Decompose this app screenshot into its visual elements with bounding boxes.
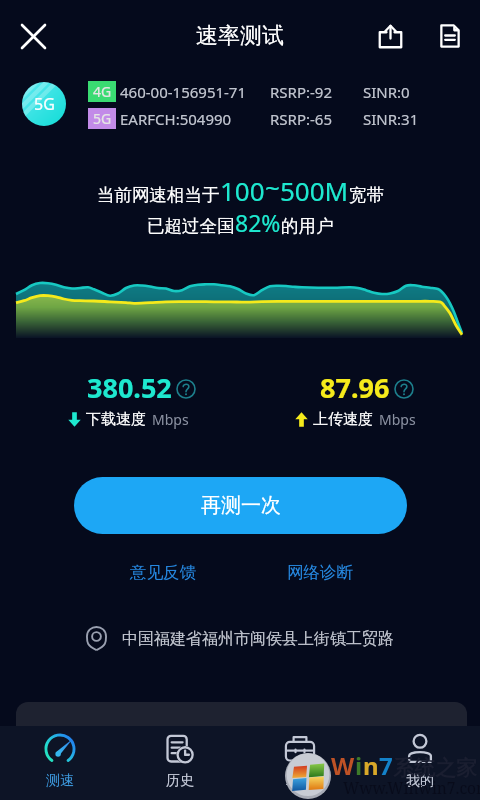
staticText: EARFCH:504990 (120, 109, 232, 129)
staticText: 历史 (166, 772, 194, 790)
staticText: 系统之家 (393, 755, 477, 781)
button[interactable]: Upload info (394, 379, 414, 399)
staticText: SINR:31 (363, 109, 419, 129)
staticText: 5G (93, 109, 112, 128)
staticText: 宽带 (349, 184, 384, 206)
staticText: 100 (220, 173, 265, 208)
staticText: ~ (265, 169, 280, 204)
button[interactable]: 意见反馈 (125, 559, 201, 586)
staticText: 5G (34, 93, 55, 115)
staticText: 7 (379, 749, 393, 782)
staticText: 再测一次 (201, 493, 281, 518)
staticText: Www.Winwin7.com (343, 777, 480, 798)
staticText: 测速 (46, 772, 74, 790)
staticText: 当前网速相当于 (97, 184, 220, 206)
staticText: RSRP:-65 (270, 109, 332, 129)
button[interactable]: 网络诊断 (282, 559, 358, 586)
button[interactable]: Report (433, 19, 467, 53)
staticText: 4G (93, 82, 112, 101)
button[interactable] (16, 702, 467, 752)
staticText: 速率测试 (196, 22, 284, 50)
button[interactable]: 历史 (120, 726, 240, 800)
staticText: SINR:0 (363, 82, 410, 102)
staticText: 工具 (286, 772, 314, 790)
staticText: 网络诊断 (287, 562, 353, 583)
staticText: 380.52 (87, 369, 172, 406)
button[interactable]: Share (373, 19, 407, 53)
staticText: 下载速度 (86, 410, 146, 429)
staticText: i (355, 749, 363, 782)
staticText: 上传速度 (313, 410, 373, 429)
staticText: 500M (280, 173, 349, 208)
staticText: 的用户 (281, 215, 334, 237)
button[interactable]: 测速 (0, 726, 120, 800)
button[interactable]: Close (17, 20, 49, 52)
staticText: Mbps (152, 410, 189, 429)
staticText: 已超过全国 (147, 215, 235, 237)
staticText: 我的 (406, 772, 434, 790)
staticText: W (331, 749, 355, 782)
button[interactable]: 工具 (240, 726, 360, 800)
staticText: 82% (235, 207, 281, 238)
staticText: 意见反馈 (130, 562, 196, 583)
staticText: 中国福建省福州市闽侯县上街镇工贸路 (122, 629, 394, 649)
button[interactable]: 再测一次 (74, 477, 407, 534)
staticText: Mbps (379, 410, 416, 429)
button[interactable]: Download info (176, 379, 196, 399)
button[interactable]: 我的 (360, 726, 480, 800)
staticText: 87.96 (320, 369, 390, 406)
staticText: n (363, 749, 379, 782)
staticText: 460-00-156951-71 (120, 82, 247, 102)
staticText: RSRP:-92 (270, 82, 332, 102)
